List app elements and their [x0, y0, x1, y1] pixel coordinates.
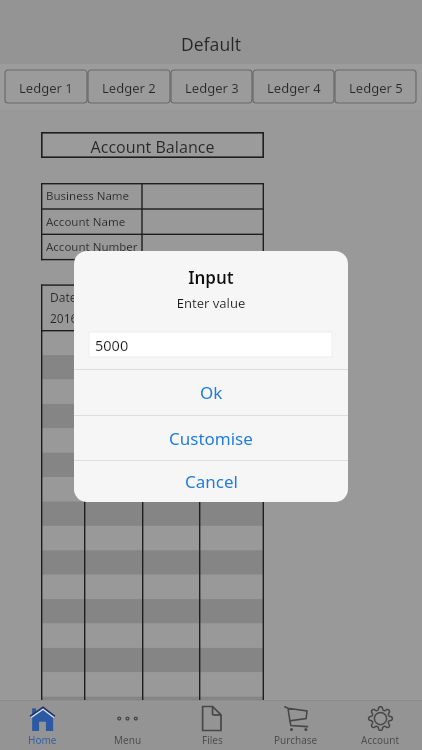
staticText: Files [202, 733, 223, 747]
staticText: Ledger 5 [349, 79, 403, 97]
button[interactable]: 5000 [89, 332, 332, 357]
staticText: Account Name [46, 214, 126, 230]
staticText: Home [28, 733, 57, 747]
staticText: Ledger 1 [19, 79, 73, 97]
button[interactable]: Customise [74, 416, 348, 460]
staticText: Enter value [74, 294, 348, 312]
button[interactable]: Home [0, 701, 85, 750]
button[interactable]: Ok [74, 370, 348, 415]
button[interactable]: Account Balance [41, 132, 264, 158]
staticText: Account [361, 733, 400, 747]
staticText: Ok [200, 381, 223, 404]
staticText: Cancel [185, 470, 238, 493]
button[interactable]: Account [338, 701, 422, 750]
button[interactable]: Menu [85, 701, 170, 750]
staticText: Date [50, 289, 77, 305]
staticText: 2016 [50, 310, 78, 326]
button[interactable]: Ledger 4 [253, 70, 334, 103]
staticText: Ledger 2 [102, 79, 156, 97]
staticText: Customise [169, 427, 253, 450]
button[interactable]: Ledger 5 [335, 70, 416, 103]
staticText: Business Name [46, 188, 130, 204]
staticText: Default [0, 32, 422, 56]
button[interactable]: Purchase [254, 701, 338, 750]
button[interactable]: Cancel [74, 461, 348, 502]
staticText: Purchase [274, 733, 318, 747]
staticText: Input [74, 266, 348, 289]
button[interactable]: Files [170, 701, 254, 750]
staticText: Ledger 4 [267, 79, 321, 97]
staticText: Menu [114, 733, 142, 747]
button[interactable]: Ledger 3 [171, 70, 252, 103]
staticText: Account Number [46, 239, 138, 255]
button[interactable]: Ledger 2 [88, 70, 170, 103]
staticText: Ledger 3 [185, 79, 239, 97]
staticText: 5000 [95, 335, 129, 355]
button[interactable]: Ledger 1 [5, 70, 87, 103]
